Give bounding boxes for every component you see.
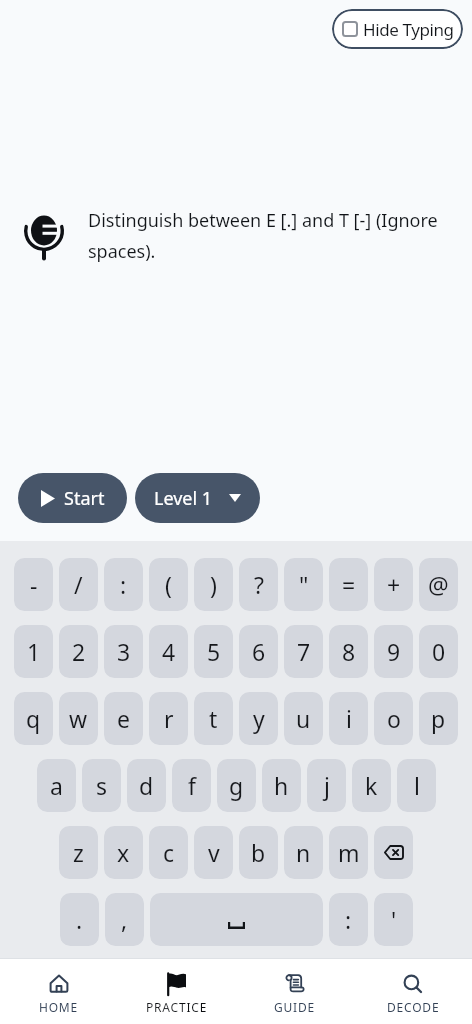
- staticText: h: [274, 770, 289, 801]
- staticText: j: [324, 770, 330, 801]
- button[interactable]: Level 1: [135, 473, 260, 523]
- button[interactable]: (: [149, 558, 188, 611]
- staticText: t: [209, 703, 218, 734]
- staticText: i: [346, 703, 352, 734]
- button[interactable]: ': [374, 893, 413, 946]
- button[interactable]: q: [14, 692, 53, 745]
- staticText: a: [50, 770, 63, 801]
- button[interactable]: =: [329, 558, 368, 611]
- button[interactable]: o: [374, 692, 413, 745]
- staticText: ,: [121, 904, 128, 935]
- staticText: 6: [252, 636, 266, 667]
- staticText: ": [299, 569, 309, 600]
- staticText: Distinguish between E [.] and T [-] (Ign…: [88, 208, 438, 263]
- button[interactable]: z: [59, 826, 98, 879]
- button[interactable]: 9: [374, 625, 413, 678]
- button[interactable]: s: [82, 759, 121, 812]
- staticText: 4: [162, 636, 176, 667]
- staticText: e: [117, 703, 130, 734]
- staticText: r: [164, 703, 174, 734]
- button[interactable]: /: [59, 558, 98, 611]
- button[interactable]: 6: [239, 625, 278, 678]
- button[interactable]: 0: [419, 625, 458, 678]
- staticText: k: [365, 770, 378, 801]
- button[interactable]: GUIDE: [236, 959, 354, 1024]
- staticText: x: [117, 837, 130, 868]
- staticText: DECODE: [387, 999, 440, 1015]
- button[interactable]: r: [149, 692, 188, 745]
- button[interactable]: PRACTICE: [118, 959, 236, 1024]
- button[interactable]: -: [14, 558, 53, 611]
- staticText: u: [296, 703, 311, 734]
- button[interactable]: j: [307, 759, 346, 812]
- button[interactable]: x: [104, 826, 143, 879]
- button[interactable]: Hide Typing: [332, 9, 463, 49]
- button[interactable]: t: [194, 692, 233, 745]
- button[interactable]: 2: [59, 625, 98, 678]
- button[interactable]: .: [60, 893, 99, 946]
- button[interactable]: f: [172, 759, 211, 812]
- button[interactable]: n: [284, 826, 323, 879]
- button[interactable]: [374, 826, 413, 879]
- button[interactable]: v: [194, 826, 233, 879]
- button[interactable]: g: [217, 759, 256, 812]
- button[interactable]: h: [262, 759, 301, 812]
- button[interactable]: @: [419, 558, 458, 611]
- staticText: m: [338, 837, 360, 868]
- staticText: ': [391, 904, 397, 935]
- button[interactable]: e: [104, 692, 143, 745]
- button[interactable]: ?: [239, 558, 278, 611]
- staticText: .: [76, 904, 83, 935]
- button[interactable]: c: [149, 826, 188, 879]
- staticText: q: [26, 703, 41, 734]
- staticText: o: [387, 703, 401, 734]
- button[interactable]: 8: [329, 625, 368, 678]
- staticText: -: [30, 569, 38, 600]
- staticText: 3: [117, 636, 131, 667]
- staticText: =: [342, 569, 356, 600]
- button[interactable]: +: [374, 558, 413, 611]
- staticText: p: [431, 703, 446, 734]
- button[interactable]: l: [397, 759, 436, 812]
- staticText: z: [73, 837, 84, 868]
- button[interactable]: Start: [18, 473, 127, 523]
- button[interactable]: k: [352, 759, 391, 812]
- staticText: Start: [64, 486, 105, 511]
- button[interactable]: 5: [194, 625, 233, 678]
- staticText: 2: [72, 636, 86, 667]
- staticText: 9: [387, 636, 401, 667]
- button[interactable]: p: [419, 692, 458, 745]
- staticText: y: [253, 703, 265, 734]
- button[interactable]: :: [329, 893, 368, 946]
- staticText: g: [229, 770, 244, 801]
- button[interactable]: ,: [105, 893, 144, 946]
- button[interactable]: w: [59, 692, 98, 745]
- button[interactable]: 1: [14, 625, 53, 678]
- staticText: ?: [254, 569, 264, 600]
- staticText: +: [387, 569, 401, 600]
- button[interactable]: 3: [104, 625, 143, 678]
- button[interactable]: d: [127, 759, 166, 812]
- button[interactable]: m: [329, 826, 368, 879]
- button[interactable]: a: [37, 759, 76, 812]
- staticText: f: [188, 770, 196, 801]
- button[interactable]: i: [329, 692, 368, 745]
- button[interactable]: DECODE: [354, 959, 472, 1024]
- button[interactable]: b: [239, 826, 278, 879]
- button[interactable]: ): [194, 558, 233, 611]
- button[interactable]: ": [284, 558, 323, 611]
- button[interactable]: u: [284, 692, 323, 745]
- staticText: c: [163, 837, 175, 868]
- staticText: v: [208, 837, 220, 868]
- staticText: b: [251, 837, 266, 868]
- staticText: HOME: [39, 999, 79, 1015]
- staticText: 0: [432, 636, 446, 667]
- button[interactable]: 4: [149, 625, 188, 678]
- button[interactable]: HOME: [0, 959, 118, 1024]
- button[interactable]: y: [239, 692, 278, 745]
- staticText: l: [414, 770, 420, 801]
- button[interactable]: [150, 893, 323, 946]
- button[interactable]: :: [104, 558, 143, 611]
- button[interactable]: 7: [284, 625, 323, 678]
- staticText: /: [74, 569, 83, 600]
